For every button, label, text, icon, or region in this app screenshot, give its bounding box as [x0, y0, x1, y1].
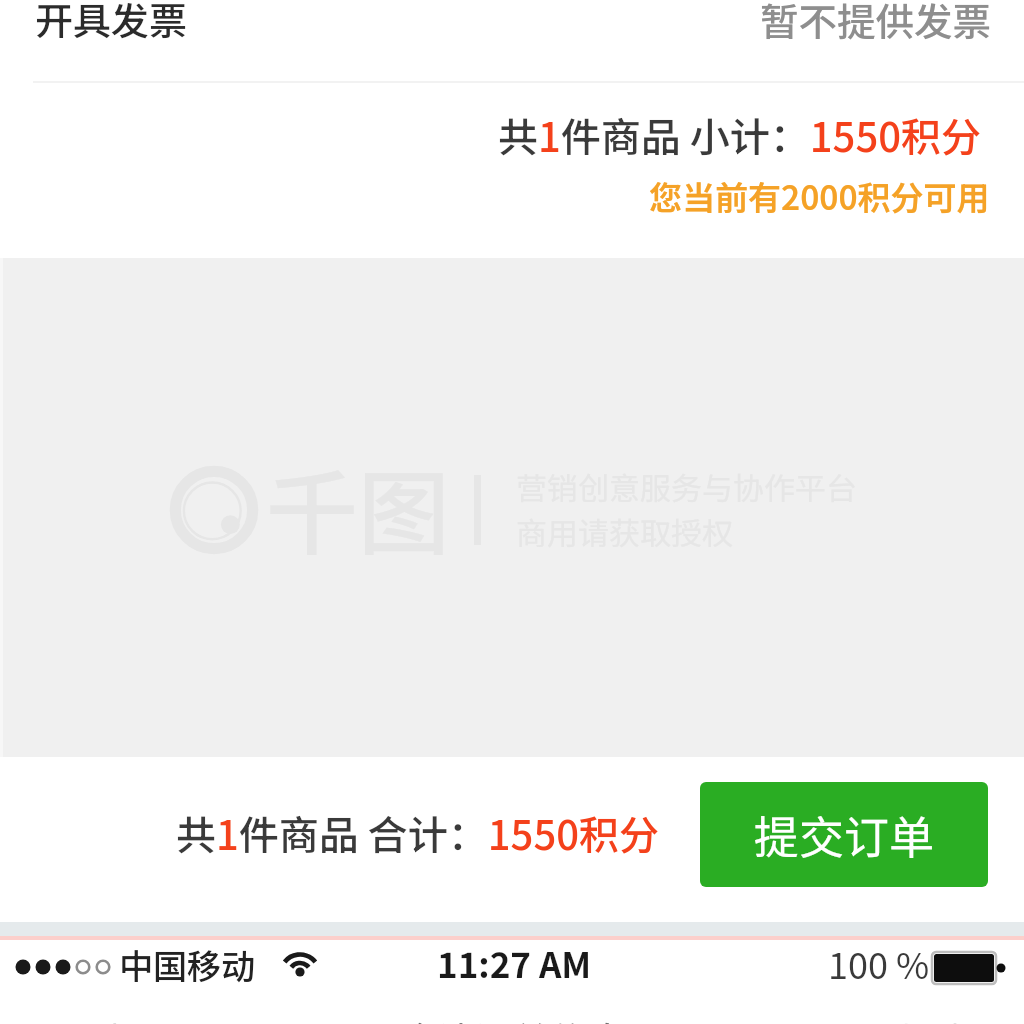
other: Battery full	[934, 954, 1006, 994]
button[interactable]: 提交订单	[700, 782, 988, 887]
other: Wi-Fi	[280, 947, 320, 981]
staticText: 您当前有2000积分可用	[649, 172, 990, 220]
staticText: 中国移动	[119, 940, 255, 989]
button[interactable]: 开具发票	[0, 0, 1024, 84]
staticText: 100 %	[828, 937, 930, 989]
staticText: 营销创意服务与协作平台	[516, 464, 857, 509]
other: Signal strength	[0, 940, 1024, 1024]
staticText: 共1件商品 小计：1550积分	[498, 106, 981, 164]
staticText: 商用请获取授权	[516, 509, 733, 554]
staticText: 确认订单信息	[398, 1011, 627, 1024]
staticText: 暂不提供发票	[760, 0, 992, 47]
staticText: 共1件商品 合计：1550积分	[176, 804, 659, 862]
staticText: 提交订单	[754, 802, 935, 867]
staticText: 千图	[266, 440, 451, 573]
staticText: 11:27 AM	[437, 937, 592, 988]
staticText: 开具发票	[35, 0, 188, 46]
